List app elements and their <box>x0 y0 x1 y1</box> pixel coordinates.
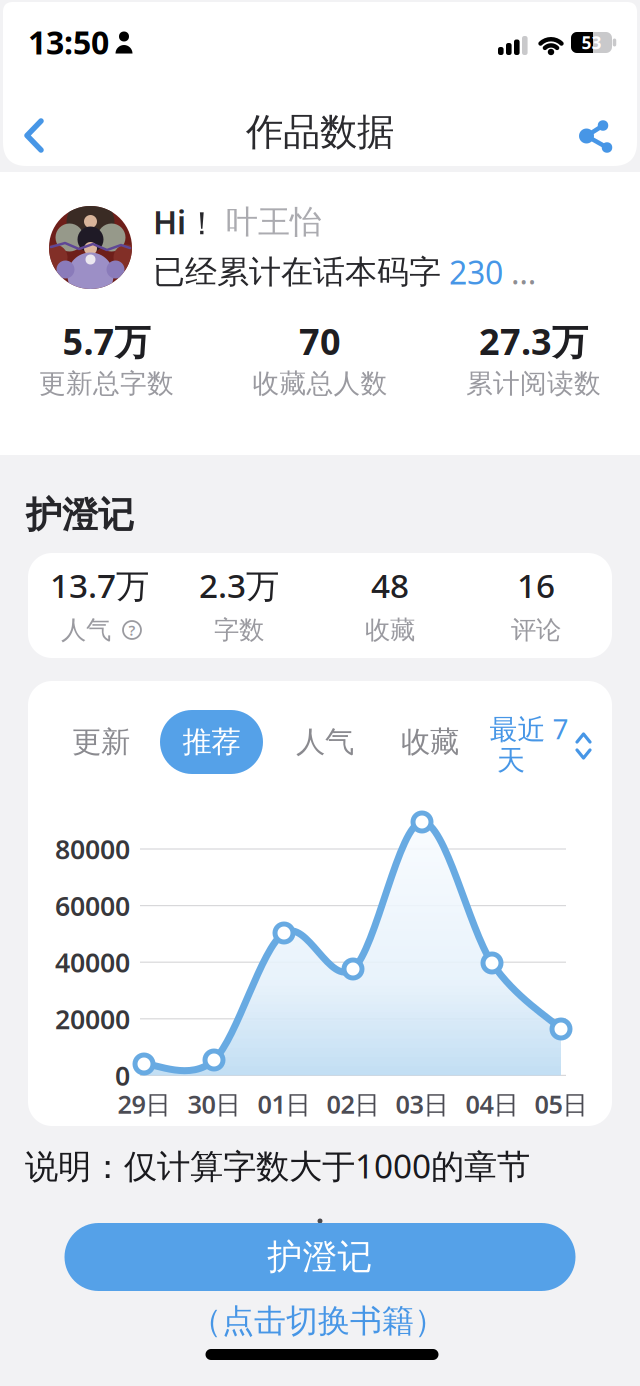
staticText: 13.7万 <box>50 563 149 607</box>
staticText: ? <box>128 620 135 640</box>
staticText: 53 <box>581 31 601 54</box>
staticText: 01日 <box>257 1087 310 1121</box>
staticText: 已经累计在话本码字 <box>153 252 441 292</box>
staticText: 护澄记 <box>267 1236 372 1278</box>
staticText: 最近 7 <box>489 710 568 747</box>
staticText: 80000 <box>55 831 130 867</box>
staticText: 累计阅读数 <box>466 367 601 400</box>
button[interactable]: 推荐 <box>160 710 263 774</box>
staticText: 说明：仅计算字数大于1000的章节 <box>25 1143 530 1188</box>
button[interactable]: 人气说明 <box>119 617 145 643</box>
staticText: 人气 <box>296 724 354 760</box>
staticText: 29日 <box>117 1087 170 1121</box>
staticText: 护澄记 <box>26 493 134 537</box>
staticText: 20000 <box>55 1001 130 1036</box>
staticText: 更新 <box>72 724 130 760</box>
button[interactable]: （点击切换书籍） <box>158 1299 478 1343</box>
staticText: 2.3万 <box>199 563 279 607</box>
staticText: 天 <box>497 743 525 778</box>
button[interactable]: Back <box>5 103 69 167</box>
staticText: 27.3万 <box>479 317 588 365</box>
staticText: 03日 <box>395 1087 448 1121</box>
staticText: 0 <box>115 1058 130 1093</box>
staticText: 30日 <box>187 1087 240 1121</box>
staticText: 02日 <box>326 1087 379 1121</box>
button[interactable]: Share <box>560 95 624 175</box>
staticText: 13:50 <box>28 21 109 63</box>
staticText: 收藏 <box>365 614 415 645</box>
staticText: 叶王怡 <box>226 202 322 242</box>
button[interactable]: 收藏 <box>387 710 473 774</box>
staticText: 收藏总人数 <box>252 367 387 400</box>
staticText: 04日 <box>465 1087 518 1121</box>
staticText: 05日 <box>534 1087 587 1121</box>
button[interactable]: 护澄记 <box>64 1223 575 1291</box>
staticText: … <box>503 251 536 293</box>
staticText: 60000 <box>55 888 130 923</box>
button[interactable]: 人气 <box>282 710 368 774</box>
staticText: 48 <box>371 563 409 607</box>
staticText: 字数 <box>214 614 264 645</box>
staticText: （点击切换书籍） <box>190 1301 446 1341</box>
staticText: 40000 <box>55 944 130 980</box>
staticText: 人气 <box>61 614 111 645</box>
staticText: 5.7万 <box>62 317 150 365</box>
staticText: Hi！ <box>153 201 218 243</box>
staticText: 16 <box>517 563 555 607</box>
staticText: 收藏 <box>401 724 459 760</box>
staticText: 更新总字数 <box>39 367 174 400</box>
staticText: 作品数据 <box>246 109 394 155</box>
button[interactable]: 最近 7 <box>495 707 601 785</box>
staticText: 推荐 <box>182 724 240 760</box>
staticText: 70 <box>299 317 341 365</box>
button[interactable]: 更新 <box>58 710 144 774</box>
staticText: 评论 <box>511 614 561 645</box>
staticText: 230 <box>441 251 503 293</box>
